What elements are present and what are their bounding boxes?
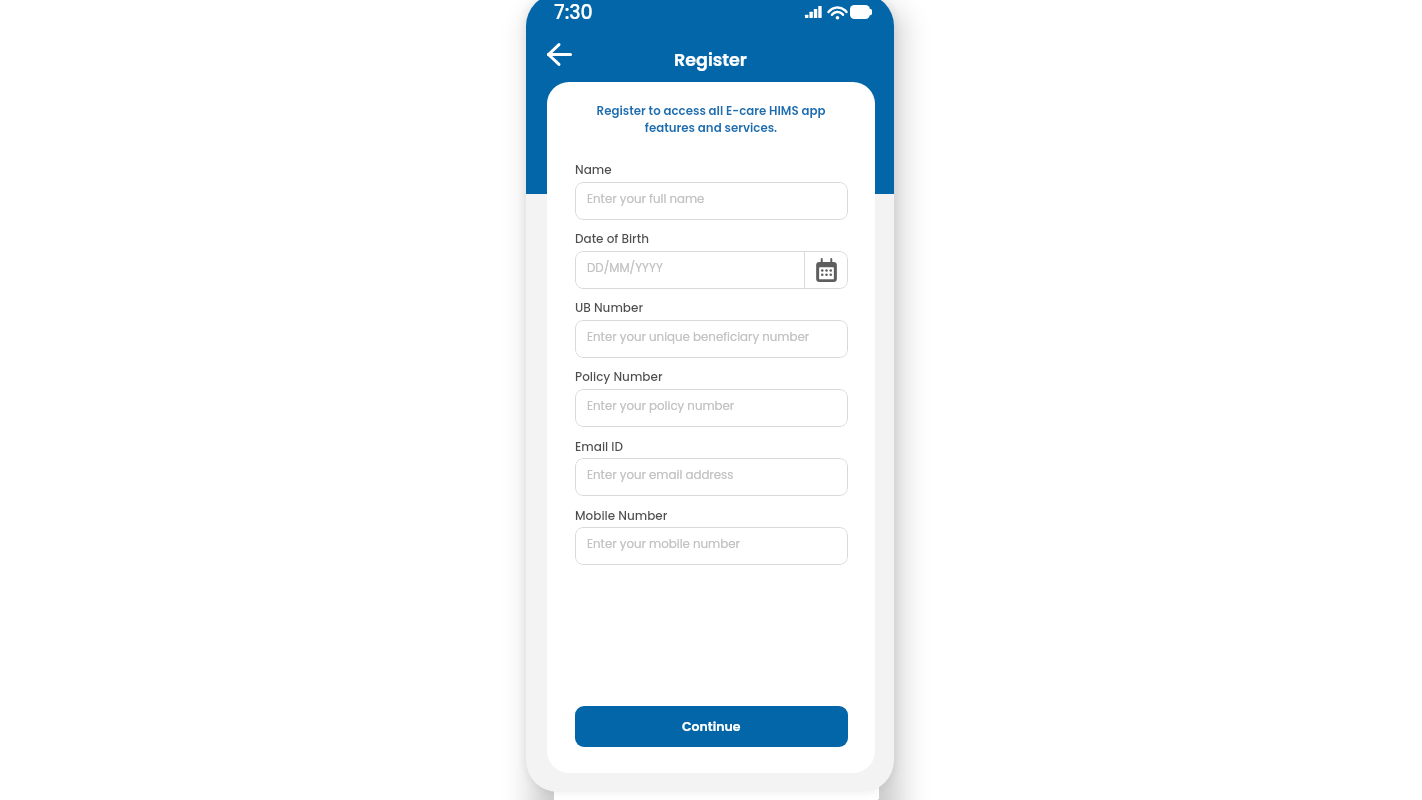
- button[interactable]: Enter your unique beneficiary number: [575, 320, 848, 358]
- staticText: Email ID: [575, 438, 624, 455]
- button[interactable]: Enter your policy number: [575, 389, 848, 427]
- button[interactable]: Enter your email address: [575, 458, 848, 496]
- staticText: Enter your policy number: [587, 398, 735, 415]
- staticText: 7:30: [554, 0, 593, 23]
- staticText: Register: [674, 48, 747, 73]
- staticText: DD/MM/YYYY: [587, 260, 663, 277]
- button[interactable]: DD/MM/YYYY: [575, 251, 848, 289]
- staticText: Enter your full name: [587, 191, 705, 208]
- button[interactable]: Enter your mobile number: [575, 527, 848, 565]
- button[interactable]: Pick date: [804, 251, 848, 289]
- staticText: Mobile Number: [575, 507, 668, 524]
- staticText: UB Number: [575, 299, 644, 316]
- staticText: Register to access all E-care HIMS app f…: [569, 103, 853, 137]
- staticText: Enter your email address: [587, 467, 734, 484]
- staticText: Policy Number: [575, 368, 663, 385]
- button[interactable]: Enter your full name: [575, 182, 848, 220]
- staticText: Name: [575, 161, 612, 178]
- button[interactable]: Continue: [575, 706, 848, 747]
- staticText: Enter your mobile number: [587, 536, 740, 553]
- button[interactable]: Back: [536, 34, 582, 74]
- staticText: Enter your unique beneficiary number: [587, 329, 810, 346]
- staticText: Continue: [682, 718, 741, 735]
- staticText: Date of Birth: [575, 230, 649, 247]
